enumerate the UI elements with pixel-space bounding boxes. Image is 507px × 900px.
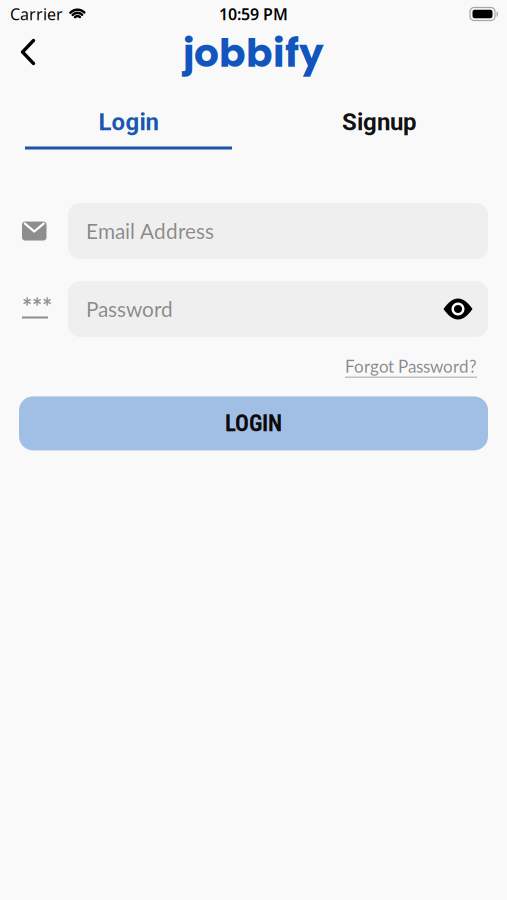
staticText: Email Address [86,218,214,243]
button[interactable]: Forgot Password? [345,356,477,376]
button[interactable]: LOGIN [19,396,488,450]
staticText: jobbify [183,26,324,80]
staticText: Carrier [10,3,63,25]
button[interactable]: Signup [276,100,483,144]
staticText: Login [98,108,158,136]
button[interactable]: Show password [440,291,476,327]
button[interactable]: Login [25,100,232,144]
staticText: Password [86,296,173,321]
staticText: LOGIN [225,410,282,437]
staticText: Signup [342,108,417,136]
staticText: 10:59 PM [219,3,288,25]
button[interactable]: Back [12,32,43,71]
button[interactable]: Password [68,281,488,337]
staticText: *** [22,293,52,321]
button[interactable]: Email Address [68,203,488,259]
staticText: Forgot Password? [345,356,477,376]
